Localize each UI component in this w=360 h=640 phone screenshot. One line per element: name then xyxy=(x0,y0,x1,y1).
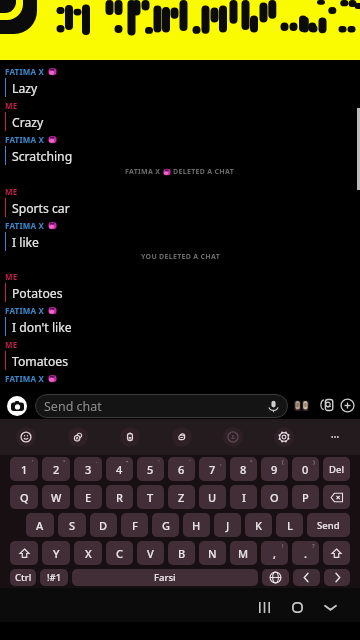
button[interactable]: FATIMA X xyxy=(5,373,57,383)
button[interactable]: E xyxy=(74,485,102,509)
button[interactable]: Open camera xyxy=(7,396,27,416)
button[interactable]: 0 xyxy=(292,457,319,481)
staticText: E xyxy=(85,490,92,505)
button[interactable]: C xyxy=(106,541,133,565)
button[interactable]: Back xyxy=(317,594,343,620)
button[interactable]: 4 xyxy=(106,457,133,481)
button[interactable]: N xyxy=(199,541,226,565)
staticText: 6 xyxy=(178,462,185,477)
button[interactable]: V xyxy=(137,541,164,565)
staticText: B xyxy=(178,546,186,561)
staticText: 1 xyxy=(21,462,28,477)
button[interactable]: Send xyxy=(307,513,350,537)
button[interactable]: J xyxy=(214,513,241,537)
button[interactable]: X xyxy=(74,541,102,565)
button[interactable]: GIF xyxy=(52,419,104,455)
staticText: 8 xyxy=(240,462,247,477)
button[interactable]: FATIMA X xyxy=(5,66,57,76)
button[interactable] xyxy=(323,541,350,565)
button[interactable]: More options xyxy=(309,419,360,455)
button[interactable]: 2 xyxy=(42,457,70,481)
button[interactable]: Add attachment xyxy=(337,395,357,415)
button[interactable]: ME xyxy=(5,339,18,349)
button[interactable]: G xyxy=(152,513,179,537)
button[interactable] xyxy=(323,485,350,509)
staticText: ! xyxy=(282,542,284,550)
button[interactable]: ME xyxy=(5,100,18,110)
button[interactable]: . xyxy=(292,541,319,565)
staticText: 2 xyxy=(53,462,60,477)
button[interactable]: 8 xyxy=(230,457,257,481)
staticText: D xyxy=(99,518,108,533)
button[interactable]: Y xyxy=(42,541,70,565)
staticText: Z xyxy=(178,490,185,505)
button[interactable]: Screenshot xyxy=(156,419,207,455)
button[interactable]: FATIMA X xyxy=(5,305,57,315)
button[interactable]: Settings xyxy=(258,419,309,455)
staticText: L xyxy=(287,518,293,533)
button[interactable]: Recent apps xyxy=(251,594,277,620)
button[interactable]: Stickers xyxy=(317,395,337,415)
staticText: Lazy xyxy=(12,80,38,96)
button[interactable]: T xyxy=(137,485,164,509)
button[interactable]: 3 xyxy=(74,457,102,481)
staticText: W xyxy=(51,490,62,505)
button[interactable]: 7 xyxy=(199,457,226,481)
button[interactable]: 9 xyxy=(261,457,288,481)
button[interactable]: L xyxy=(276,513,303,537)
button[interactable]: Friends xyxy=(291,395,311,415)
staticText: Scratching xyxy=(12,148,73,164)
button[interactable]: !#1 xyxy=(40,569,68,586)
staticText: R xyxy=(116,490,123,505)
button[interactable]: U xyxy=(199,485,226,509)
button[interactable] xyxy=(324,569,350,586)
button[interactable]: Home xyxy=(284,594,310,620)
button[interactable]: Ctrl xyxy=(10,569,36,586)
button[interactable]: S xyxy=(58,513,86,537)
button[interactable]: P xyxy=(292,485,319,509)
button[interactable] xyxy=(262,569,289,586)
button[interactable] xyxy=(10,541,38,565)
button[interactable]: Del xyxy=(323,457,350,481)
button[interactable]: 1 xyxy=(10,457,38,481)
button[interactable]: O xyxy=(261,485,288,509)
button[interactable]: D xyxy=(90,513,117,537)
button[interactable]: Farsi xyxy=(72,569,258,586)
staticText: 3 xyxy=(85,462,92,477)
staticText: N xyxy=(208,546,217,561)
button[interactable] xyxy=(293,569,320,586)
button[interactable]: Send chat xyxy=(35,394,288,418)
button[interactable]: Z xyxy=(168,485,195,509)
staticText: C xyxy=(116,546,123,561)
staticText: J xyxy=(226,518,230,533)
button[interactable]: Voice typing xyxy=(207,419,258,455)
button[interactable]: F xyxy=(121,513,148,537)
staticText: A xyxy=(36,518,44,533)
button[interactable]: I xyxy=(230,485,257,509)
button[interactable]: R xyxy=(106,485,133,509)
staticText: I like xyxy=(12,234,39,250)
button[interactable]: , xyxy=(261,541,288,565)
staticText: G xyxy=(162,518,170,533)
staticText: V xyxy=(147,546,154,561)
button[interactable]: B xyxy=(168,541,195,565)
button[interactable]: 6 xyxy=(168,457,195,481)
staticText: 0 xyxy=(302,462,309,477)
button[interactable]: A xyxy=(26,513,54,537)
button[interactable]: FATIMA X xyxy=(5,220,57,230)
button[interactable]: Q xyxy=(10,485,38,509)
button[interactable]: Clipboard xyxy=(104,419,156,455)
button[interactable]: Emoji xyxy=(0,419,52,455)
button[interactable]: K xyxy=(245,513,272,537)
button[interactable]: 5 xyxy=(137,457,164,481)
button[interactable]: W xyxy=(42,485,70,509)
staticText: 9 xyxy=(271,462,278,477)
button[interactable]: ME xyxy=(5,271,18,281)
button[interactable]: M xyxy=(230,541,257,565)
button[interactable]: FATIMA X xyxy=(5,134,57,144)
staticText: ' xyxy=(32,458,34,466)
button[interactable]: H xyxy=(183,513,210,537)
staticText: Y xyxy=(53,546,60,561)
staticText: ME xyxy=(5,271,18,281)
button[interactable]: ME xyxy=(5,186,18,196)
